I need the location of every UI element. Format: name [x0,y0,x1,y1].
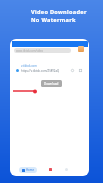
staticText: Video Downloader [31,8,87,16]
button[interactable]: More [71,69,74,72]
button[interactable]: Downloads [48,167,53,172]
staticText: Home [26,168,34,172]
staticText: www.tiktok.com/video [16,49,44,53]
button[interactable]: Download [41,80,62,87]
button[interactable]: www.tiktok.com/video [14,48,71,53]
button[interactable]: Profile [78,46,84,52]
staticText: v.tiktok.com [21,64,37,68]
button[interactable]: Settings [64,167,69,172]
button[interactable]: Copy [79,69,82,72]
staticText: https://v.tiktok.com/ZS8Y2aQ [21,69,60,73]
button[interactable]: Home [22,168,34,172]
staticText: No Watermark [31,16,76,24]
staticText: Download [44,82,59,86]
